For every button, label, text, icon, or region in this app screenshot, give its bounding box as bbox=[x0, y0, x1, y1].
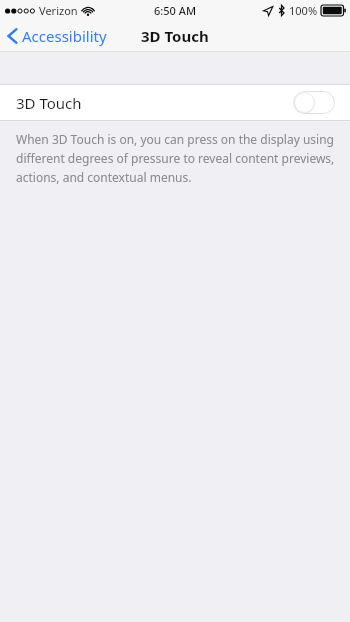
staticText: Accessibility bbox=[22, 26, 107, 46]
button[interactable]: 3D Touch bbox=[0, 85, 350, 120]
staticText: 3D Touch bbox=[141, 26, 209, 46]
button[interactable]: Accessibility bbox=[0, 20, 115, 52]
staticText: 3D Touch bbox=[16, 93, 82, 113]
staticText: 100% bbox=[289, 3, 318, 18]
staticText: different degrees of pressure to reveal … bbox=[16, 150, 335, 166]
staticText: 6:50 AM bbox=[154, 3, 197, 18]
staticText: Verizon bbox=[39, 3, 78, 18]
staticText: When 3D Touch is on, you can press on th… bbox=[16, 131, 334, 147]
button[interactable]: 3D Touch toggle, off bbox=[293, 91, 335, 114]
staticText: actions, and contextual menus. bbox=[16, 169, 192, 185]
